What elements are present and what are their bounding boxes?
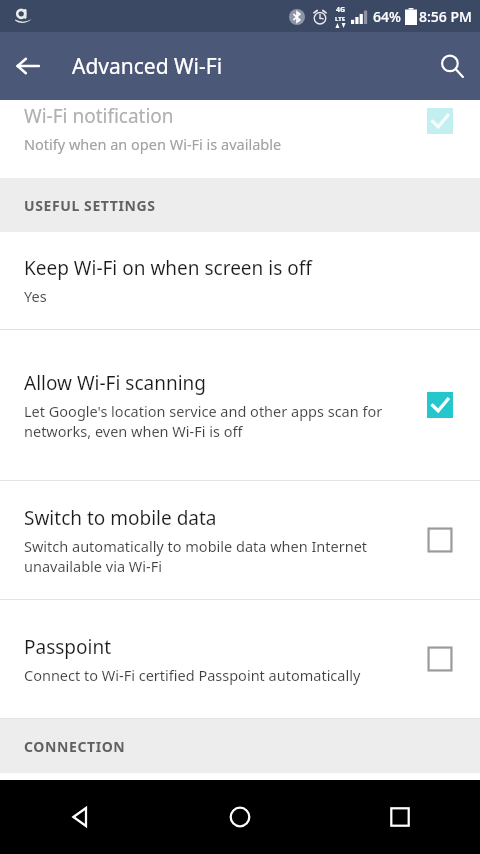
- button[interactable]: Home: [160, 780, 320, 854]
- button[interactable]: Wi-Fi notification: [0, 100, 480, 178]
- staticText: Allow Wi-Fi scanning: [24, 370, 207, 396]
- staticText: 8:56 PM: [419, 7, 472, 26]
- staticText: Switch to mobile data: [24, 505, 217, 531]
- staticText: LTE: [335, 15, 346, 23]
- staticText: Switch automatically to mobile data when…: [24, 536, 392, 576]
- staticText: Let Google's location service and other …: [24, 401, 392, 441]
- staticText: Keep Wi-Fi on when screen is off: [24, 255, 312, 281]
- staticText: Wi-Fi notification: [24, 103, 174, 129]
- staticText: USEFUL SETTINGS: [24, 196, 156, 215]
- button[interactable]: Allow Wi-Fi scanning: [0, 330, 480, 480]
- staticText: 64%: [373, 7, 401, 26]
- button[interactable]: Back: [0, 780, 160, 854]
- button[interactable]: Recents: [320, 780, 480, 854]
- staticText: Passpoint: [24, 634, 112, 660]
- staticText: Notify when an open Wi-Fi is available: [24, 134, 282, 154]
- staticText: Advanced Wi-Fi: [72, 52, 223, 81]
- staticText: CONNECTION: [24, 737, 126, 756]
- button[interactable]: Keep Wi-Fi on when screen is off: [0, 232, 480, 329]
- staticText: Connect to Wi-Fi certified Passpoint aut…: [24, 665, 361, 685]
- button[interactable]: Switch to mobile data: [0, 481, 480, 599]
- staticText: Yes: [24, 286, 47, 306]
- button[interactable]: Passpoint: [0, 600, 480, 718]
- button[interactable]: Back: [0, 38, 56, 94]
- button[interactable]: Search: [424, 38, 480, 94]
- staticText: 4G: [336, 5, 346, 15]
